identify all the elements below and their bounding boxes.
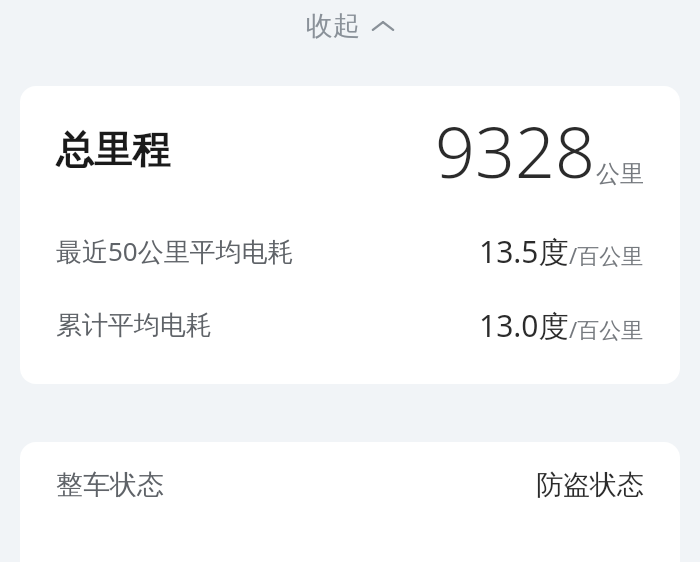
button[interactable]: 最近50公里平均电耗 <box>56 214 644 288</box>
button[interactable]: 收起 <box>0 0 700 52</box>
staticText: 累计平均电耗 <box>56 309 212 342</box>
button[interactable]: 累计平均电耗 <box>56 288 644 362</box>
staticText: 9328 <box>435 103 595 198</box>
staticText: 防盗状态 <box>536 468 644 502</box>
staticText: 最近50公里平均电耗 <box>56 233 294 269</box>
staticText: 总里程 <box>56 126 170 174</box>
button[interactable]: 整车状态 <box>56 442 644 528</box>
button[interactable]: 总里程 <box>56 86 644 214</box>
staticText: /百公里 <box>569 240 644 270</box>
staticText: 公里 <box>596 159 644 189</box>
staticText: /百公里 <box>569 314 644 344</box>
staticText: 整车状态 <box>56 468 164 502</box>
staticText: 13.5度 <box>479 231 569 272</box>
staticText: 13.0度 <box>479 305 569 346</box>
staticText: 收起 <box>306 9 360 43</box>
